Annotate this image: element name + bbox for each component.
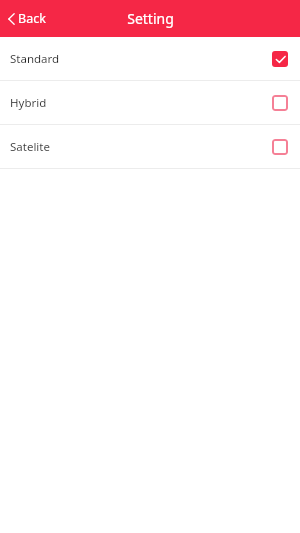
staticText: Standard: [10, 51, 60, 67]
button[interactable]: Standard: [0, 37, 300, 80]
staticText: Satelite: [10, 139, 50, 155]
button[interactable]: Back: [0, 4, 56, 33]
staticText: Setting: [127, 9, 174, 28]
button[interactable]: Satelite: [0, 125, 300, 168]
button[interactable]: Hybrid: [0, 81, 300, 124]
staticText: Back: [18, 10, 46, 27]
staticText: Hybrid: [10, 95, 47, 111]
